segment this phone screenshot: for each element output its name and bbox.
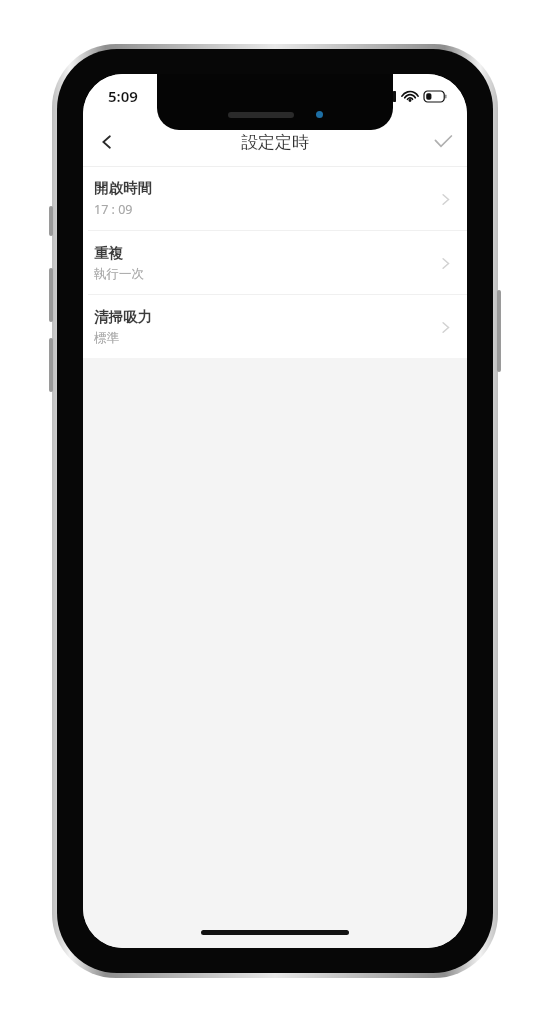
staticText: 開啟時間 — [94, 179, 152, 197]
button[interactable]: 開啟時間 — [83, 167, 467, 230]
staticText: 執行一次 — [94, 266, 144, 282]
staticText: 重複 — [94, 244, 123, 262]
button[interactable]: 清掃吸力 — [83, 295, 467, 358]
button[interactable]: 重複 — [83, 231, 467, 294]
staticText: 設定定時 — [241, 132, 309, 153]
staticText: 標準 — [94, 330, 119, 346]
button[interactable]: Back — [83, 118, 131, 166]
staticText: 清掃吸力 — [94, 308, 152, 326]
staticText: 5:09 — [108, 86, 138, 106]
staticText: 17 : 09 — [94, 201, 133, 218]
button[interactable]: Confirm — [419, 118, 467, 166]
